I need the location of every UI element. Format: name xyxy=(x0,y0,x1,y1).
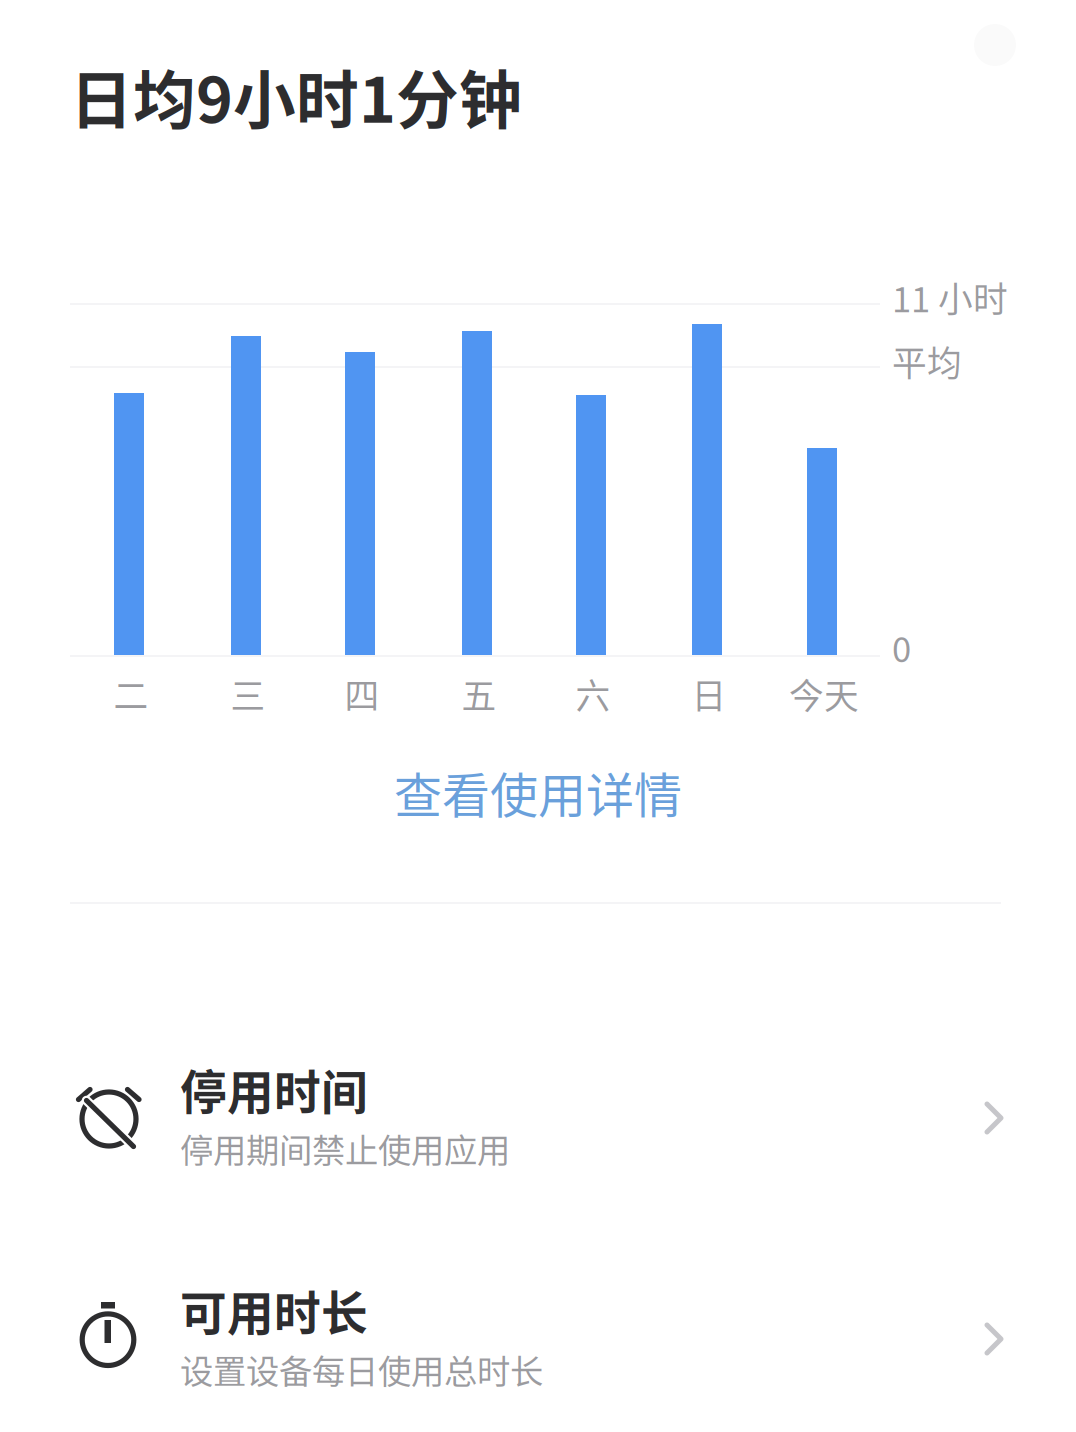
staticText: 日 xyxy=(691,669,726,719)
staticText: 平均 xyxy=(892,336,962,386)
staticText: 可用时长 xyxy=(180,1276,368,1344)
staticText: 二 xyxy=(113,669,148,719)
staticText: 查看使用详情 xyxy=(394,757,682,827)
staticText: 0 xyxy=(892,622,911,672)
staticText: 五 xyxy=(461,669,496,719)
staticText: 日均9小时1分钟 xyxy=(70,50,522,141)
staticText: 设置设备每日使用总时长 xyxy=(180,1345,543,1393)
staticText: 11 小时 xyxy=(892,272,1008,322)
staticText: 停用期间禁止使用应用 xyxy=(180,1124,510,1172)
button[interactable]: 可用时长 xyxy=(0,1254,1076,1412)
staticText: 四 xyxy=(344,669,379,719)
staticText: 六 xyxy=(575,669,610,719)
staticText: 三 xyxy=(230,669,265,719)
button[interactable]: 停用时间 xyxy=(0,1033,1076,1191)
staticText: 停用时间 xyxy=(180,1055,368,1123)
button[interactable]: 查看使用详情 xyxy=(0,755,1076,829)
staticText: 今天 xyxy=(789,669,859,719)
